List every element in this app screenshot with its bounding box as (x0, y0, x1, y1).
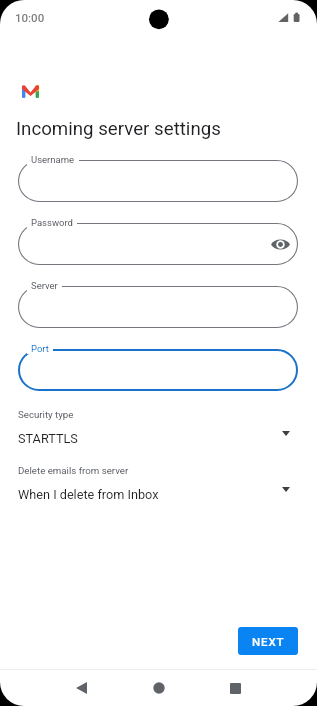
button[interactable]: Password (18, 223, 298, 265)
staticText: Username (31, 154, 75, 165)
button[interactable]: Server (18, 286, 298, 328)
button[interactable]: Back (57, 670, 105, 706)
staticText: 10:00 (15, 11, 45, 24)
staticText: NEXT (252, 635, 285, 648)
staticText: Security type (18, 409, 74, 420)
button[interactable]: Recent apps (211, 670, 259, 706)
button[interactable]: NEXT (238, 627, 298, 655)
button[interactable]: Port (18, 349, 298, 391)
button[interactable]: Delete emails from server (0, 462, 317, 510)
button[interactable]: Home (135, 670, 183, 706)
button[interactable]: Username (18, 160, 298, 202)
staticText: Port (31, 343, 49, 354)
staticText: Server (31, 280, 58, 291)
staticText: Incoming server settings (16, 118, 221, 140)
button[interactable]: Show password (267, 231, 293, 257)
staticText: When I delete from Inbox (18, 487, 159, 502)
staticText: Delete emails from server (18, 465, 129, 476)
staticText: Password (31, 217, 73, 228)
staticText: STARTTLS (18, 431, 78, 446)
button[interactable]: Security type (0, 406, 317, 454)
